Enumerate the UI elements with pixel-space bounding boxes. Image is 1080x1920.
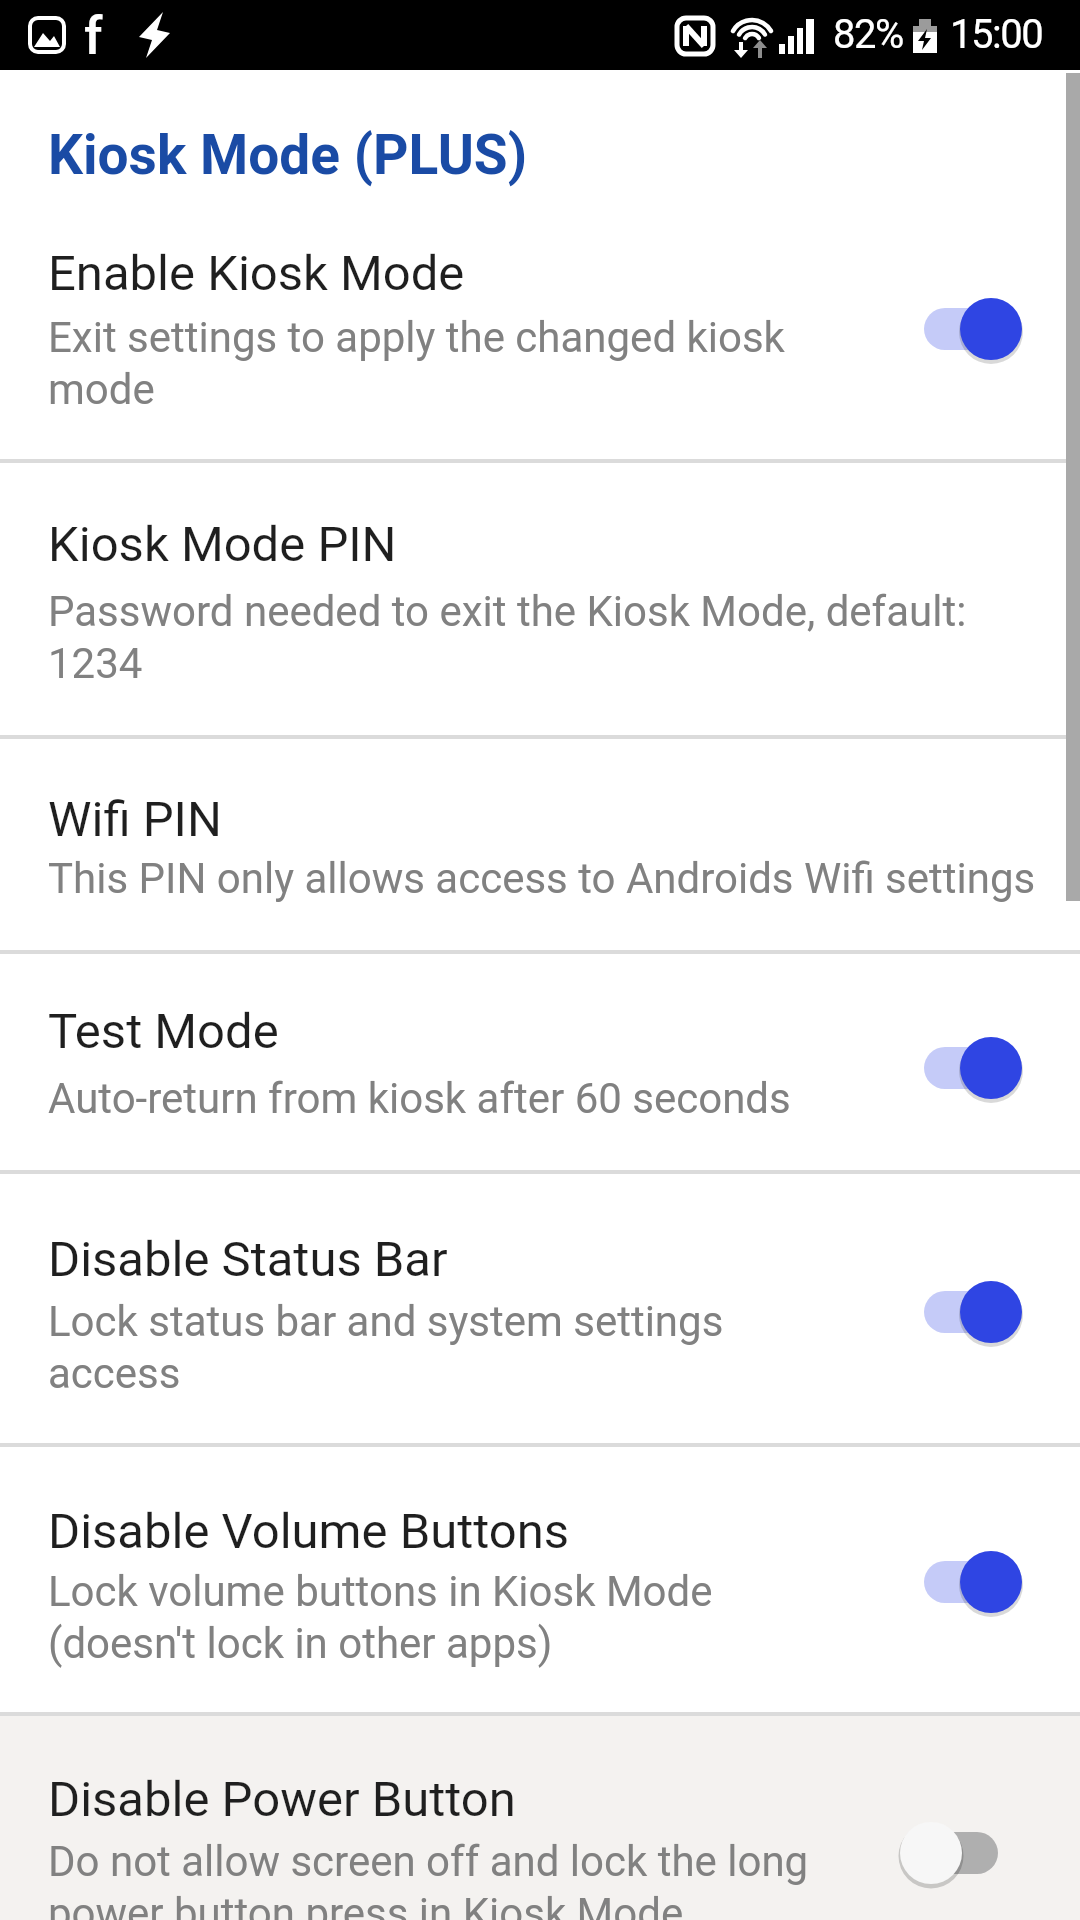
staticText: 15:00 xyxy=(950,11,1043,58)
staticText: access xyxy=(48,1349,181,1398)
staticText: Exit settings to apply the changed kiosk xyxy=(48,313,785,362)
button[interactable]: Enable Kiosk Mode xyxy=(0,210,1080,459)
staticText: Test Mode xyxy=(48,1003,279,1060)
staticText: 82% xyxy=(833,11,903,58)
staticText: Do not allow screen off and lock the lon… xyxy=(48,1837,809,1886)
staticText: Kiosk Mode (PLUS) xyxy=(48,123,528,187)
staticText: Kiosk Mode PIN xyxy=(48,516,397,573)
staticText: 1234 xyxy=(48,639,143,688)
staticText: power button press in Kiosk Mode xyxy=(48,1889,684,1920)
staticText: Lock status bar and system settings xyxy=(48,1297,724,1346)
staticText: f xyxy=(84,6,103,67)
staticText: Password needed to exit the Kiosk Mode, … xyxy=(48,587,967,636)
button[interactable] xyxy=(880,1267,1050,1357)
staticText: Enable Kiosk Mode xyxy=(48,245,465,302)
button[interactable] xyxy=(880,284,1050,374)
staticText: Auto-return from kiosk after 60 seconds xyxy=(48,1074,791,1123)
button[interactable] xyxy=(880,1808,1050,1898)
button[interactable]: Disable Power Button xyxy=(0,1716,1080,1920)
button[interactable]: Wifi PIN xyxy=(0,739,1080,950)
button[interactable] xyxy=(880,1537,1050,1627)
staticText: Disable Status Bar xyxy=(48,1231,448,1288)
staticText: Disable Power Button xyxy=(48,1771,516,1828)
button[interactable] xyxy=(880,1023,1050,1113)
staticText: Lock volume buttons in Kiosk Mode xyxy=(48,1567,713,1616)
staticText: (doesn't lock in other apps) xyxy=(48,1619,553,1668)
button[interactable]: Disable Status Bar xyxy=(0,1174,1080,1443)
button[interactable]: Test Mode xyxy=(0,954,1080,1170)
button[interactable]: Disable Volume Buttons xyxy=(0,1447,1080,1712)
staticText: mode xyxy=(48,365,155,414)
button[interactable]: Kiosk Mode PIN xyxy=(0,463,1080,735)
staticText: Disable Volume Buttons xyxy=(48,1503,570,1560)
staticText: This PIN only allows access to Androids … xyxy=(48,854,1036,903)
staticText: Wifi PIN xyxy=(48,791,222,848)
